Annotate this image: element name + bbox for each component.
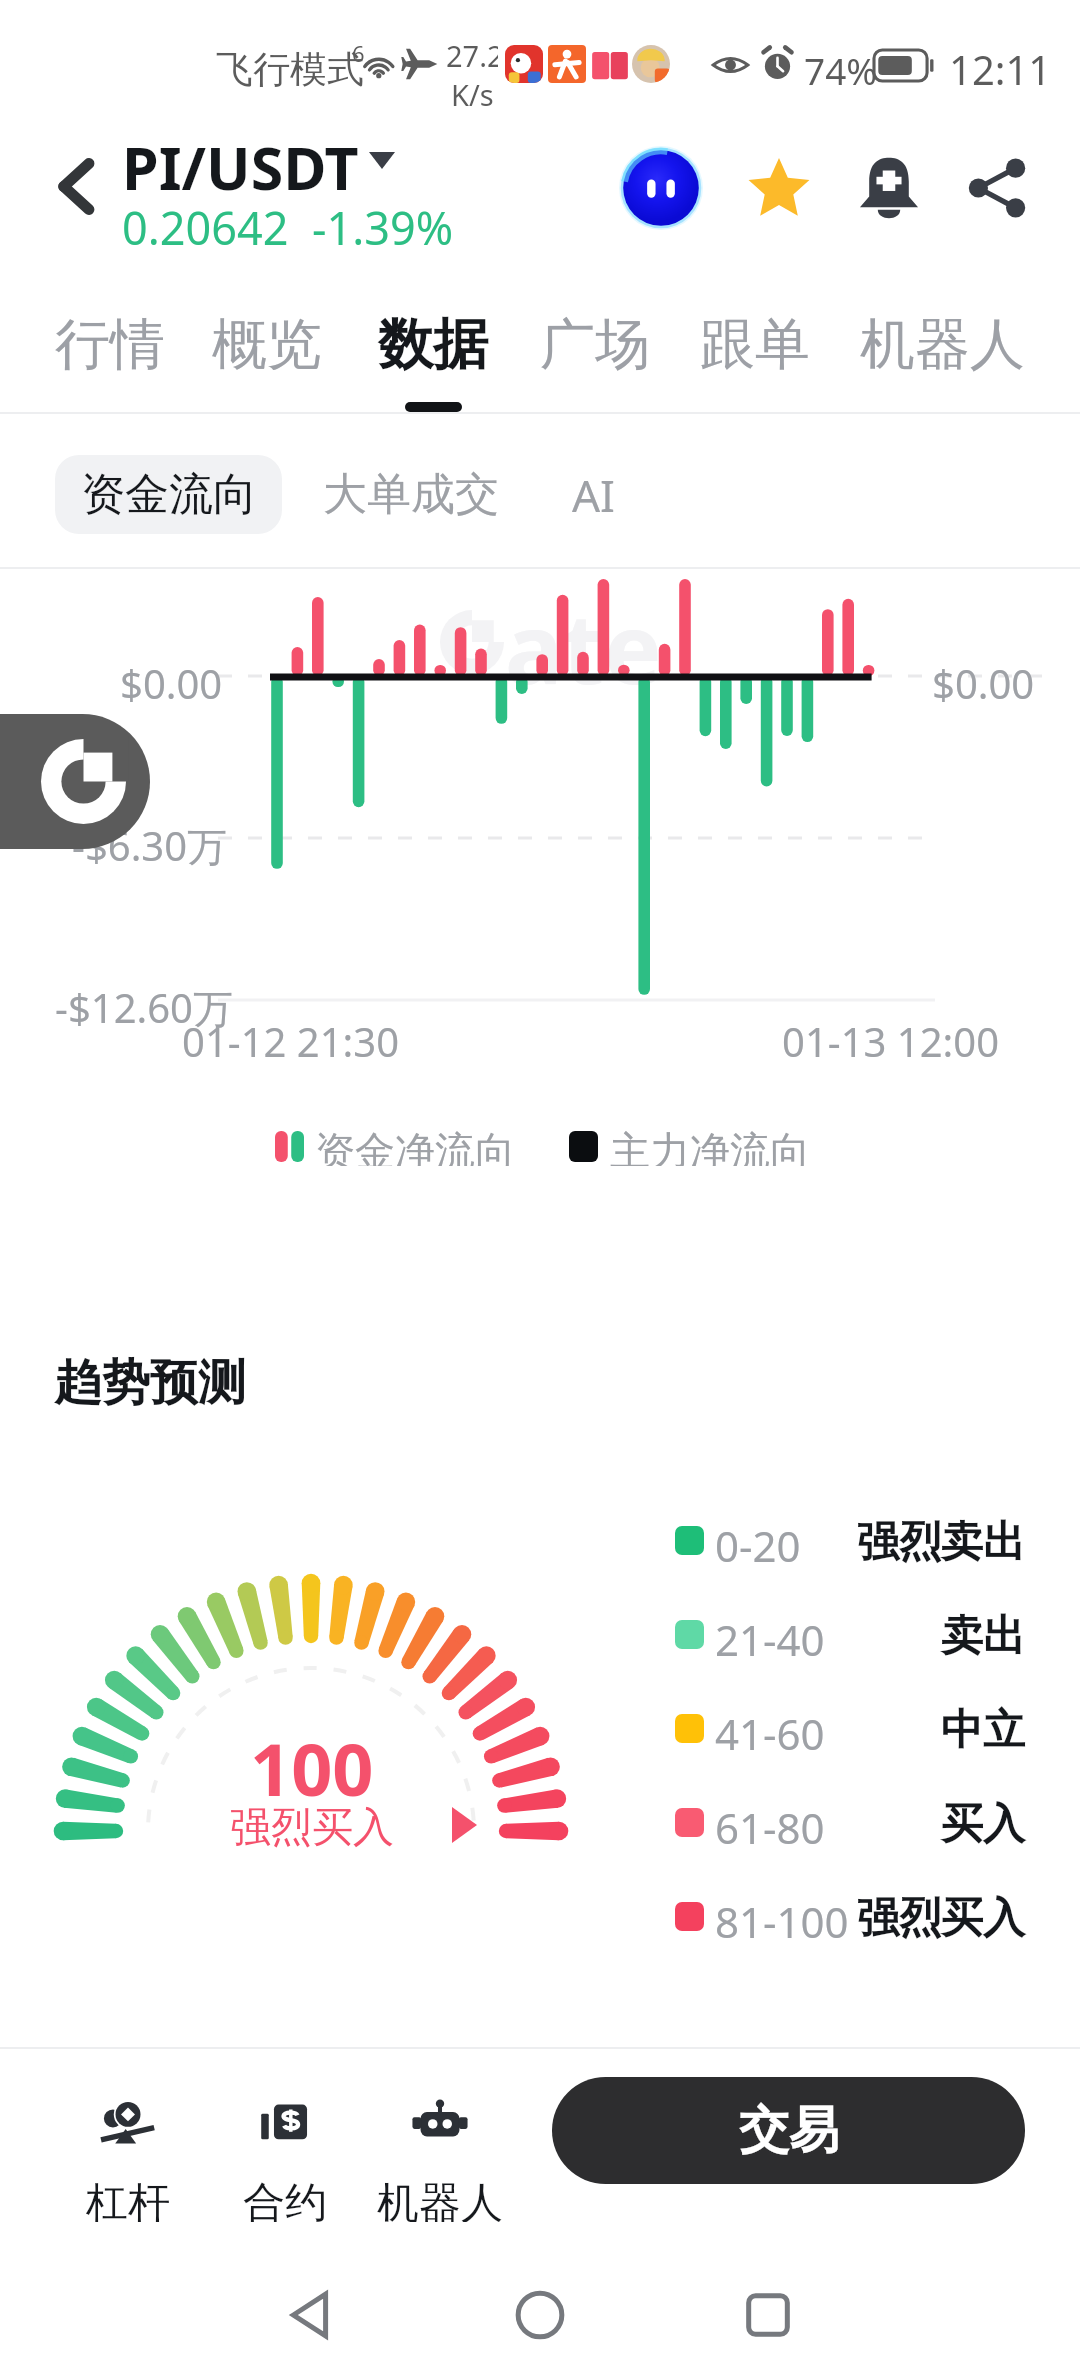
staticText: 卖出 <box>941 1610 1025 1663</box>
button[interactable]: 合约 <box>210 2097 360 2222</box>
button[interactable]: 资金流向 <box>55 455 282 534</box>
staticText: 01-12 21:30 <box>182 1014 400 1068</box>
button[interactable]: Home <box>480 2255 600 2375</box>
staticText: 广场 <box>540 310 650 379</box>
staticText: -$6.30万 <box>72 818 228 873</box>
staticText: 强烈卖出 <box>857 1516 1025 1569</box>
staticText: 27.2 <box>446 36 498 75</box>
staticText: 21-40 <box>715 1611 825 1668</box>
staticText: 中立 <box>941 1704 1025 1757</box>
button[interactable]: 0-20 <box>670 1504 1030 1578</box>
button[interactable]: 81-100 <box>670 1880 1030 1954</box>
button[interactable]: 交易 <box>552 2077 1025 2184</box>
staticText: 资金净流向 <box>315 1126 515 1166</box>
staticText: 6 <box>352 38 365 68</box>
staticText: 0.20642 -1.39% <box>122 197 454 258</box>
button[interactable] <box>124 130 444 250</box>
button[interactable]: AI assistant <box>615 142 707 234</box>
button[interactable]: 41-60 <box>670 1692 1030 1766</box>
staticText: -$12.60万 <box>55 980 233 1035</box>
button[interactable]: 行情 <box>35 310 185 412</box>
staticText: 01-13 12:00 <box>782 1014 1000 1068</box>
button[interactable]: Back <box>250 2255 370 2375</box>
button[interactable]: 61-80 <box>670 1786 1030 1860</box>
button[interactable]: 广场 <box>520 310 670 412</box>
staticText: 61-80 <box>715 1799 825 1856</box>
button[interactable]: 主力净流向 <box>569 1126 810 1166</box>
button[interactable]: 跟单 <box>680 310 830 412</box>
button[interactable]: Price alerts <box>843 142 935 234</box>
staticText: 概览 <box>212 310 322 379</box>
button[interactable]: 机器人 <box>365 2097 515 2222</box>
staticText: ate <box>505 581 662 712</box>
staticText: 强烈买入 <box>857 1892 1025 1945</box>
staticText: 大单成交 <box>323 467 499 522</box>
button[interactable]: 资金净流向 <box>275 1126 515 1166</box>
button[interactable]: 机器人 <box>840 310 1045 412</box>
staticText: 74% <box>804 45 878 95</box>
button[interactable]: Recent apps <box>708 2255 828 2375</box>
staticText: 81-100 <box>715 1893 849 1950</box>
button[interactable]: 21-40 <box>670 1598 1030 1672</box>
button[interactable]: Gate <box>0 714 150 849</box>
staticText: AI <box>572 465 616 525</box>
button[interactable]: Share <box>951 142 1043 234</box>
staticText: $0.00 <box>932 656 1035 710</box>
staticText: 机器人 <box>377 2177 503 2222</box>
staticText: 强烈买入 <box>230 1802 394 1854</box>
button[interactable]: Favourite <box>733 142 825 234</box>
button[interactable]: 大单成交 <box>306 455 516 534</box>
button[interactable]: 概览 <box>192 310 342 412</box>
button[interactable]: 数据 <box>358 310 508 412</box>
staticText: 数据 <box>378 310 488 379</box>
staticText: 趋势预测 <box>54 1353 246 1413</box>
staticText: 12:11 <box>949 42 1052 96</box>
staticText: 100 <box>250 1719 374 1817</box>
staticText: 主力净流向 <box>610 1126 810 1166</box>
staticText: 杠杆 <box>86 2177 170 2222</box>
staticText: K/s <box>451 75 494 114</box>
staticText: 飞行模式 <box>216 46 364 93</box>
button[interactable]: 杠杆 <box>53 2097 203 2222</box>
staticText: 资金流向 <box>81 467 257 522</box>
staticText: 行情 <box>55 310 165 379</box>
staticText: 机器人 <box>860 310 1025 379</box>
staticText: PI/USDT <box>122 127 359 207</box>
button[interactable]: AI <box>534 455 654 534</box>
staticText: 交易 <box>739 2099 839 2162</box>
staticText: 合约 <box>243 2177 327 2222</box>
staticText: 跟单 <box>700 310 810 379</box>
staticText: 0-20 <box>715 1517 801 1574</box>
button[interactable]: Back <box>33 143 119 229</box>
staticText: $0.00 <box>120 656 223 710</box>
staticText: 买入 <box>941 1798 1025 1851</box>
staticText: 41-60 <box>715 1705 825 1762</box>
